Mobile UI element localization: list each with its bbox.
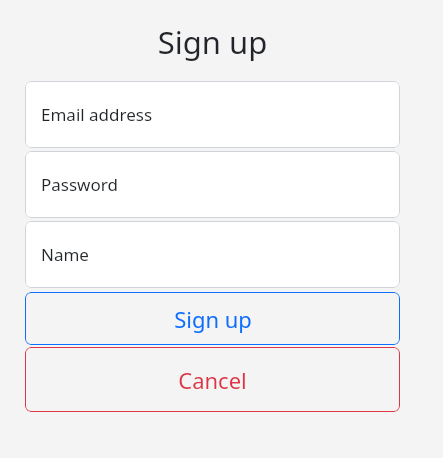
staticText: Password [41, 173, 118, 196]
button[interactable]: Email address [25, 81, 400, 148]
staticText: Email address [41, 103, 153, 126]
button[interactable]: Cancel [25, 347, 400, 412]
button[interactable]: Sign up [25, 292, 400, 345]
staticText: Sign up [25, 21, 400, 63]
staticText: Name [41, 243, 89, 266]
button[interactable]: Name [25, 221, 400, 288]
staticText: Cancel [178, 365, 247, 395]
button[interactable]: Password [25, 151, 400, 218]
staticText: Sign up [174, 304, 252, 334]
